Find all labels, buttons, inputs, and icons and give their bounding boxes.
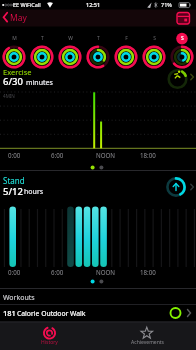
staticText: May — [10, 12, 27, 24]
staticText: NOON — [96, 151, 116, 159]
staticText: S — [153, 35, 156, 42]
button[interactable] — [0, 171, 196, 199]
button[interactable] — [0, 9, 42, 26]
staticText: hours — [24, 187, 44, 197]
staticText: EE WiFiCall — [13, 1, 41, 8]
staticText: 4MIN — [3, 93, 15, 99]
button[interactable] — [172, 9, 194, 26]
staticText: 6/30 — [3, 75, 23, 88]
staticText: S — [181, 35, 184, 42]
staticText: F — [125, 35, 128, 42]
staticText: 18:00 — [140, 268, 156, 276]
staticText: T — [41, 35, 44, 42]
staticText: minutes — [26, 78, 53, 88]
staticText: History — [41, 339, 58, 346]
staticText: M — [12, 35, 17, 42]
staticText: NOON — [96, 268, 116, 276]
staticText: 0:00 — [8, 268, 21, 276]
staticText: Achievements — [131, 339, 164, 346]
staticText: 12:51 — [86, 1, 101, 8]
staticText: Stand — [3, 175, 25, 186]
staticText: 6:00 — [51, 151, 64, 159]
staticText: T — [97, 35, 100, 42]
staticText: 181 — [3, 308, 16, 318]
button[interactable] — [0, 322, 98, 350]
staticText: 18:00 — [140, 151, 156, 159]
staticText: 71% — [161, 1, 172, 8]
staticText: Exercise — [3, 67, 32, 77]
staticText: 6:00 — [51, 268, 64, 276]
staticText: Workouts — [3, 293, 35, 303]
staticText: W — [68, 35, 73, 42]
staticText: 5/12 — [3, 185, 23, 198]
button[interactable] — [98, 322, 196, 350]
staticText: Calorie Outdoor Walk — [17, 309, 86, 318]
button[interactable] — [0, 305, 196, 321]
button[interactable] — [0, 64, 196, 90]
staticText: 0:00 — [8, 151, 21, 159]
